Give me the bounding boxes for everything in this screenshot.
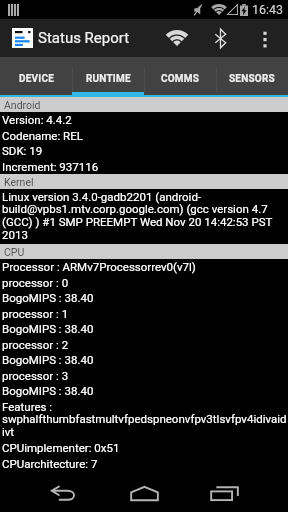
staticText: BogoMIPS : 38.40 (2, 353, 94, 366)
staticText: Codename: REL (2, 129, 83, 142)
button[interactable]: Codename: REL (0, 128, 288, 143)
staticText: 16:43 (252, 2, 284, 17)
button[interactable]: Linux version 3.4.0-gadb2201 (android-bu… (0, 189, 288, 244)
button[interactable]: RUNTIME (72, 57, 144, 97)
staticText: processor : 3 (2, 369, 69, 382)
staticText: Kernel (4, 176, 34, 188)
button[interactable]: Recent apps (184, 474, 264, 512)
staticText: Features : swphalfthumbfastmultvfpedspne… (2, 400, 288, 439)
staticText: BogoMIPS : 38.40 (2, 291, 94, 304)
staticText: processor : 0 (2, 276, 69, 289)
button[interactable]: DEVICE (0, 57, 72, 97)
button[interactable]: Kernel (0, 174, 288, 189)
staticText: COMMS (161, 73, 200, 85)
staticText: DEVICE (19, 73, 54, 85)
button[interactable]: Bluetooth (198, 19, 242, 57)
button[interactable]: Processor : ARMv7Processorrev0(v7l) (0, 259, 288, 275)
button[interactable]: Home (104, 474, 184, 512)
staticText: Linux version 3.4.0-gadb2201 (android-bu… (2, 190, 288, 242)
button[interactable]: BogoMIPS : 38.40 (0, 290, 288, 306)
staticText: RUNTIME (86, 73, 131, 85)
button[interactable]: SENSORS (216, 57, 288, 97)
button[interactable]: SDK: 19 (0, 143, 288, 159)
staticText: BogoMIPS : 38.40 (2, 384, 94, 397)
button[interactable]: COMMS (144, 57, 216, 97)
staticText: BogoMIPS : 38.40 (2, 322, 94, 335)
staticText: Android (4, 99, 41, 111)
staticText: Status Report (38, 29, 130, 47)
button[interactable]: processor : 0 (0, 275, 288, 290)
staticText: SENSORS (229, 73, 275, 85)
button[interactable]: BogoMIPS : 38.40 (0, 321, 288, 337)
button[interactable]: Back (24, 474, 104, 512)
staticText: processor : 2 (2, 338, 69, 351)
button[interactable]: Version: 4.4.2 (0, 112, 288, 128)
button[interactable]: BogoMIPS : 38.40 (0, 352, 288, 368)
button[interactable]: CPUimplementer: 0x51 (0, 440, 288, 456)
staticText: Processor : ARMv7Processorrev0(v7l) (2, 260, 196, 273)
button[interactable]: Android (0, 97, 288, 112)
button[interactable]: BogoMIPS : 38.40 (0, 383, 288, 399)
staticText: CPUarchitecture: 7 (2, 457, 98, 470)
button[interactable]: processor : 1 (0, 306, 288, 321)
staticText: SDK: 19 (2, 144, 43, 157)
button[interactable]: More options (242, 19, 288, 57)
button[interactable]: CPUarchitecture: 7 (0, 456, 288, 471)
button[interactable]: processor : 2 (0, 337, 288, 352)
button[interactable]: Increment: 937116 (0, 159, 288, 174)
staticText: Increment: 937116 (2, 160, 99, 173)
staticText: processor : 1 (2, 307, 69, 320)
button[interactable]: CPU (0, 244, 288, 259)
button[interactable]: Wi-Fi (156, 19, 198, 57)
button[interactable]: Status Report (10, 26, 34, 50)
staticText: Version: 4.4.2 (2, 113, 72, 126)
staticText: CPU (4, 246, 25, 258)
staticText: CPUimplementer: 0x51 (2, 441, 120, 454)
button[interactable]: Features : swphalfthumbfastmultvfpedspne… (0, 399, 288, 440)
button[interactable]: processor : 3 (0, 368, 288, 383)
